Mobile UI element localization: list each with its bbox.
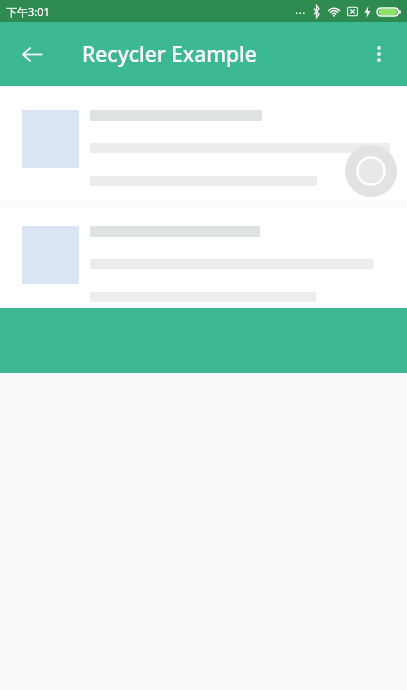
button[interactable]: Back (10, 32, 54, 76)
button[interactable]: More options (357, 32, 401, 76)
button[interactable] (0, 86, 407, 201)
button[interactable] (0, 208, 407, 308)
staticText: 下午3:01 (6, 4, 50, 19)
staticText: Recycler Example (82, 40, 257, 69)
